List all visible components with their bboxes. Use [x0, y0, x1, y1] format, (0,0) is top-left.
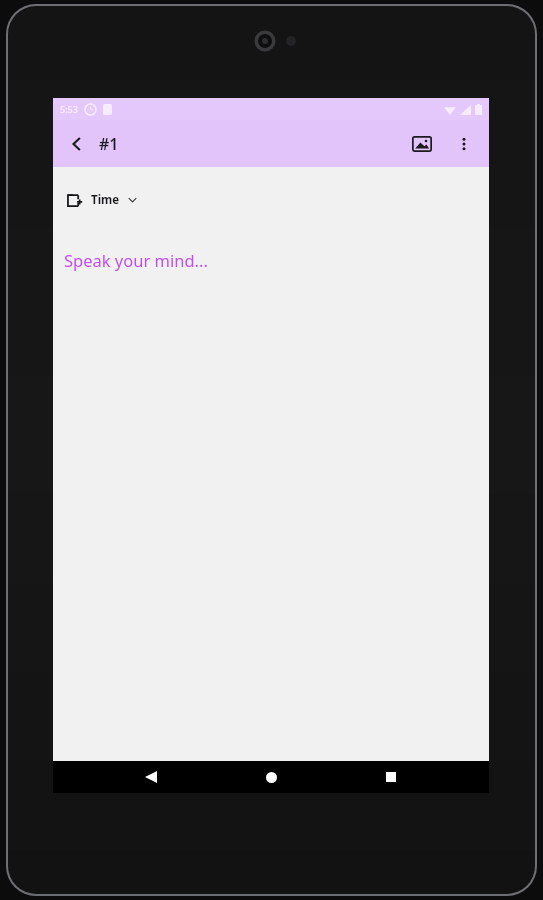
- button[interactable]: Time: [61, 187, 143, 213]
- staticText: Speak your mind...: [64, 249, 208, 271]
- button[interactable]: Back: [129, 761, 173, 793]
- button[interactable]: Insert image: [401, 123, 443, 165]
- button[interactable]: Recent apps: [369, 761, 413, 793]
- button[interactable]: Back: [57, 124, 97, 164]
- staticText: 5:53: [60, 103, 78, 115]
- button[interactable]: More options: [443, 123, 485, 165]
- button[interactable]: Speak your mind...: [64, 249, 489, 271]
- button[interactable]: Home: [249, 761, 293, 793]
- staticText: #1: [99, 133, 119, 155]
- staticText: Time: [91, 192, 120, 208]
